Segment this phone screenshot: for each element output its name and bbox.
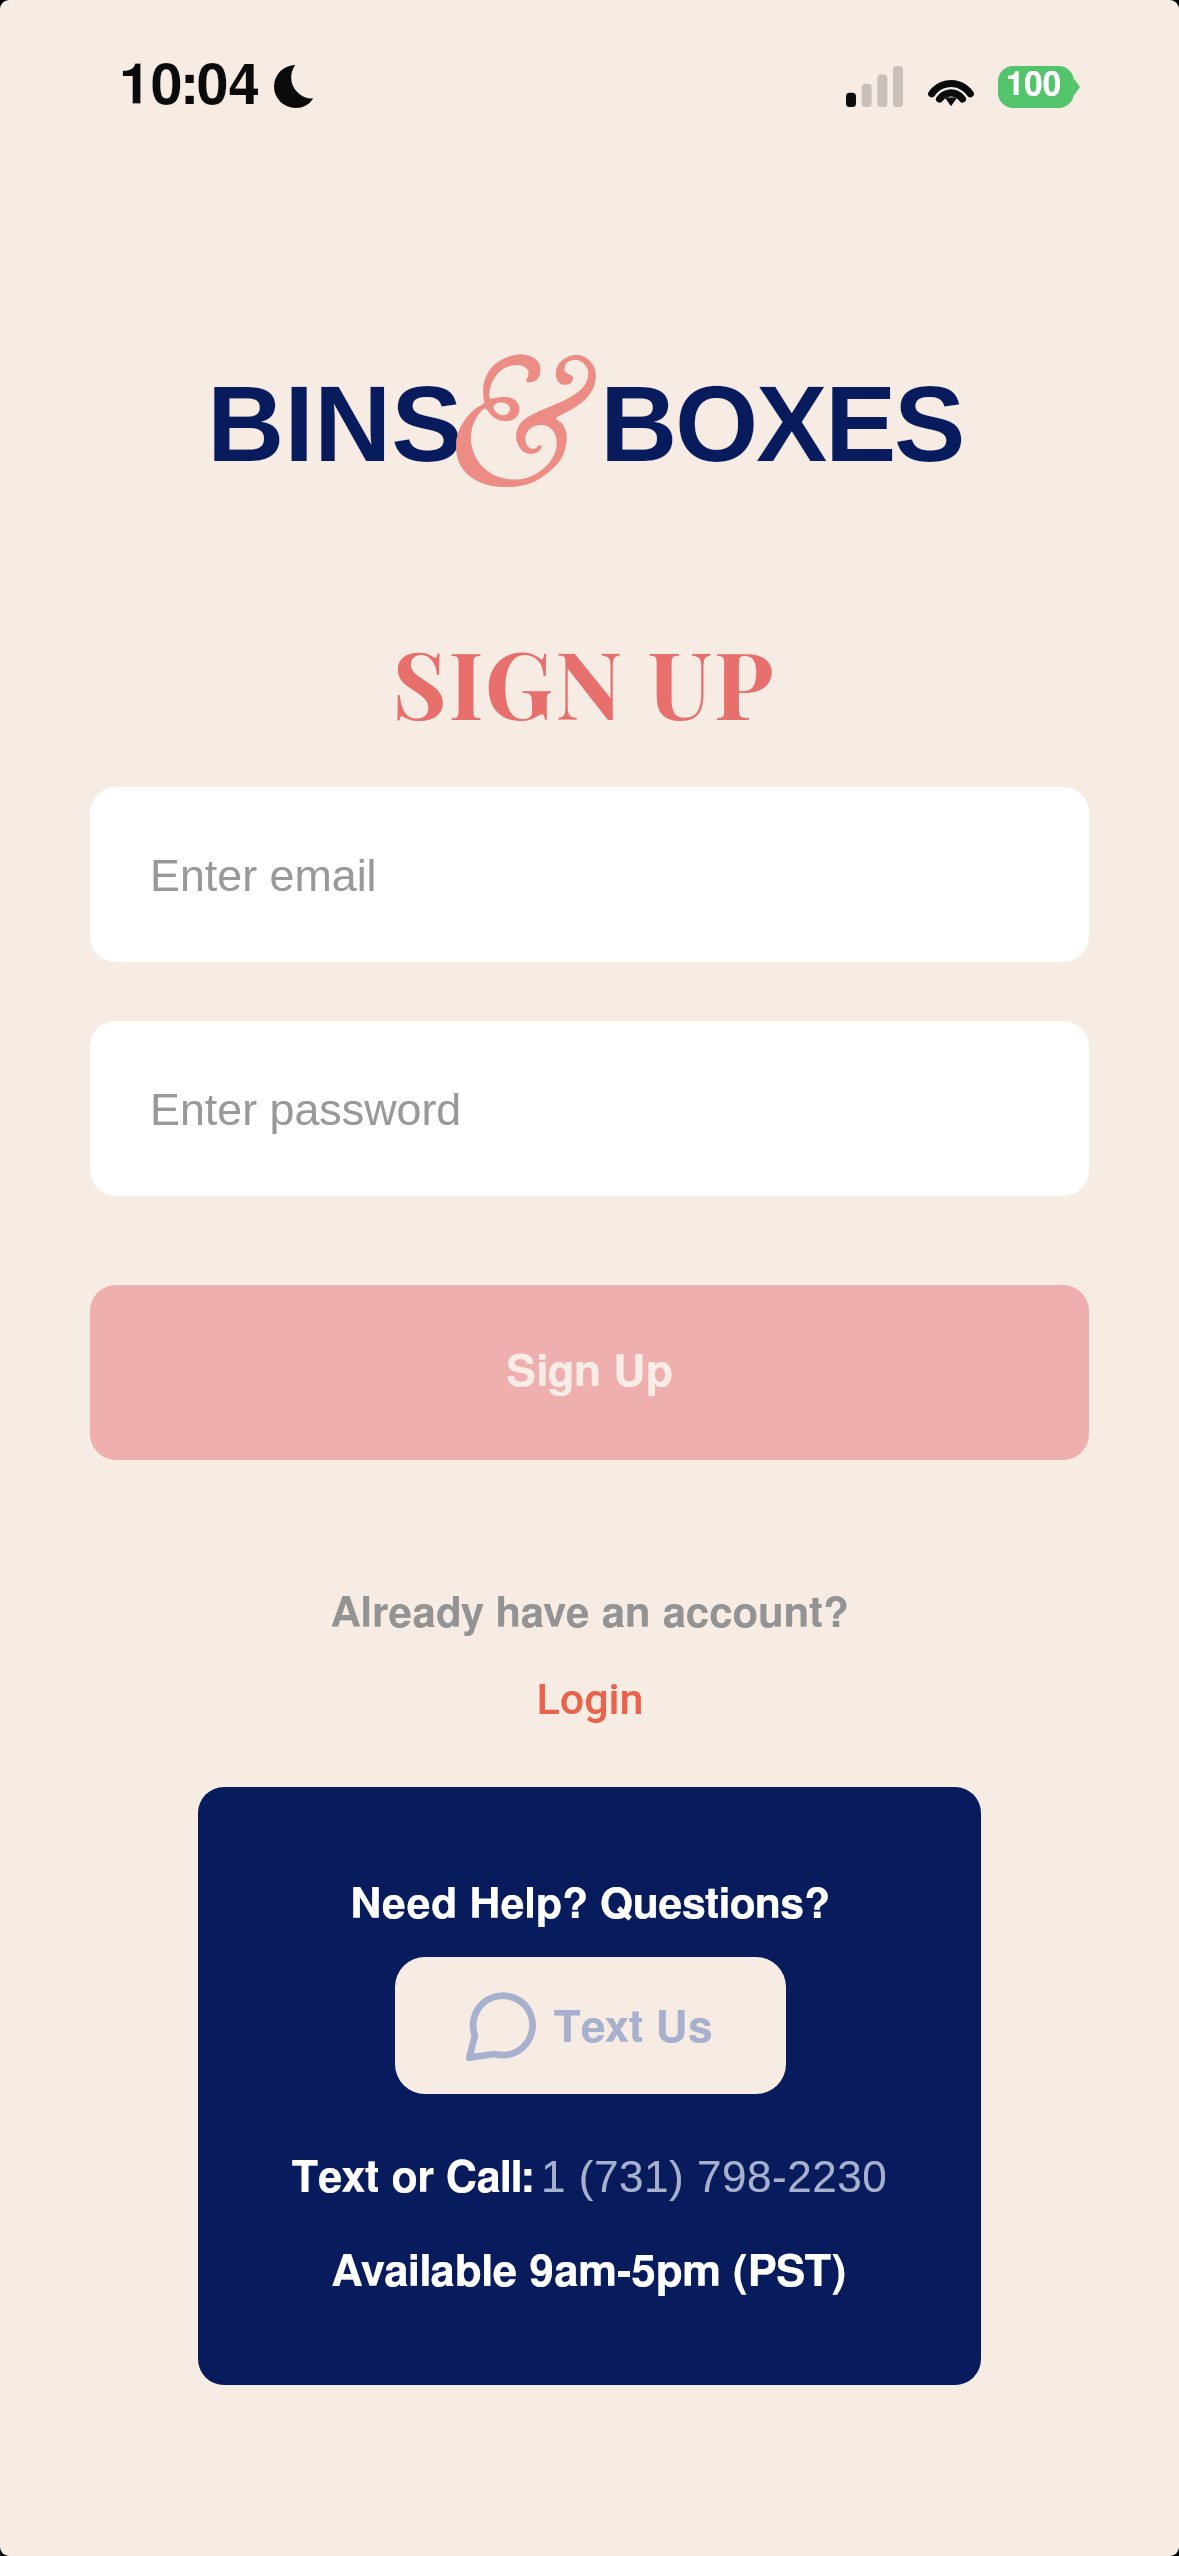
other: Battery 100 percent — [998, 66, 1080, 108]
staticText: Text Us — [553, 2007, 713, 2051]
other: Cellular signal — [846, 66, 903, 107]
button[interactable]: Enter password — [90, 1021, 1089, 1196]
button[interactable]: Text Us — [395, 1957, 786, 2094]
staticText: Enter email — [150, 850, 377, 900]
button[interactable]: Sign Up — [90, 1285, 1089, 1460]
staticText: BOXES — [600, 364, 964, 484]
staticText: 100 — [1006, 69, 1062, 102]
other: Do not disturb — [274, 65, 317, 108]
staticText: 10:04 — [119, 58, 261, 115]
staticText: Sign Up — [506, 1351, 674, 1395]
button[interactable]: Login — [518, 1664, 662, 1734]
staticText: Login — [536, 1674, 644, 1724]
staticText: Need Help? Questions? — [350, 1884, 830, 1927]
staticText: 1 (731) 798-2230 — [541, 2152, 888, 2201]
staticText: SIGN UP — [392, 619, 776, 743]
staticText: Available 9am-5pm (PST) — [332, 2251, 847, 2295]
staticText: Text or Call: — [291, 2158, 534, 2201]
button[interactable]: Enter email — [90, 787, 1089, 962]
staticText: & — [449, 312, 600, 571]
other: Wi-Fi — [924, 68, 978, 106]
other: Text Us — [468, 1994, 532, 2058]
staticText: Enter password — [150, 1084, 462, 1134]
staticText: Already have an account? — [331, 1593, 849, 1635]
staticText: BINS — [207, 364, 463, 484]
